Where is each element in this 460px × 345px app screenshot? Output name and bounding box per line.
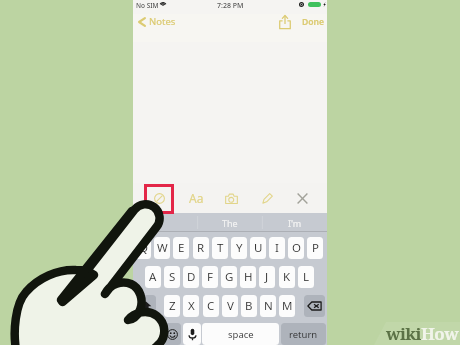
button[interactable]: Camera (220, 187, 242, 209)
staticText: K (283, 269, 291, 285)
staticText: The (222, 217, 238, 229)
button[interactable]: return (281, 323, 326, 345)
button[interactable]: K (279, 266, 295, 288)
staticText: No SIM (136, 1, 159, 10)
staticText: D (187, 269, 196, 285)
button[interactable]: T (212, 237, 228, 259)
button[interactable]: Y (231, 237, 247, 259)
staticText: I (275, 240, 279, 256)
button[interactable]: B (241, 295, 257, 317)
staticText: Notes (149, 15, 176, 28)
staticText: A (149, 269, 157, 285)
staticText: Y (236, 240, 243, 256)
button[interactable]: A (145, 266, 161, 288)
button[interactable]: Markup (256, 187, 278, 209)
staticText: H (244, 269, 253, 285)
button[interactable]: The (197, 213, 262, 232)
button[interactable]: I (269, 237, 285, 259)
button[interactable]: Checklist (148, 187, 170, 209)
button[interactable]: space (202, 323, 279, 345)
staticText: E (178, 240, 185, 256)
staticText: T (217, 240, 224, 256)
staticText: return (289, 328, 318, 341)
button[interactable]: Shift (135, 295, 156, 317)
button[interactable]: 123 (135, 323, 161, 345)
button[interactable]: M (279, 295, 295, 317)
button[interactable]: V (222, 295, 238, 317)
staticText: X (188, 298, 195, 314)
staticText: G (225, 269, 234, 285)
button[interactable]: Done (302, 16, 325, 28)
staticText: F (207, 269, 213, 285)
button[interactable]: H (240, 266, 256, 288)
staticText: J (265, 269, 269, 285)
button[interactable]: J (259, 266, 275, 288)
staticText: V (227, 298, 234, 314)
staticText: Z (169, 298, 176, 314)
button[interactable] (133, 213, 197, 232)
button[interactable]: Q (135, 237, 151, 259)
button[interactable]: R (193, 237, 209, 259)
button[interactable]: I'm (262, 213, 327, 232)
button[interactable]: Format (185, 187, 207, 209)
button[interactable]: Z (164, 295, 180, 317)
button[interactable]: E (173, 237, 189, 259)
button[interactable]: O (288, 237, 304, 259)
button[interactable]: X (183, 295, 199, 317)
staticText: P (312, 240, 319, 256)
button[interactable]: U (250, 237, 266, 259)
button[interactable]: W (154, 237, 170, 259)
button[interactable]: P (307, 237, 323, 259)
staticText: How (421, 322, 459, 345)
staticText: wiki (386, 322, 421, 345)
staticText: L (303, 269, 310, 285)
staticText: O (292, 240, 301, 256)
staticText: Aa (189, 190, 204, 206)
staticText: 7:28 PM (217, 1, 244, 11)
button[interactable]: Close keyboard (291, 187, 313, 209)
staticText: B (245, 298, 253, 314)
staticText: R (197, 240, 205, 256)
staticText: space (228, 328, 254, 341)
button[interactable]: N (260, 295, 276, 317)
button[interactable]: C (203, 295, 219, 317)
staticText: W (157, 240, 168, 256)
staticText: I'm (288, 217, 302, 229)
button[interactable]: Dictate (183, 323, 201, 345)
button[interactable]: Backspace (304, 295, 325, 317)
button[interactable]: S (164, 266, 180, 288)
staticText: C (207, 298, 215, 314)
button[interactable]: F (202, 266, 218, 288)
staticText: M (282, 298, 293, 314)
staticText: S (169, 269, 176, 285)
button[interactable]: Share (278, 14, 292, 30)
button[interactable]: L (298, 266, 314, 288)
staticText: U (254, 240, 263, 256)
staticText: Q (139, 240, 148, 256)
button[interactable]: Notes (138, 15, 176, 28)
button[interactable]: Emoji (163, 323, 181, 345)
button[interactable]: G (221, 266, 237, 288)
staticText: N (264, 298, 273, 314)
button[interactable]: D (183, 266, 199, 288)
